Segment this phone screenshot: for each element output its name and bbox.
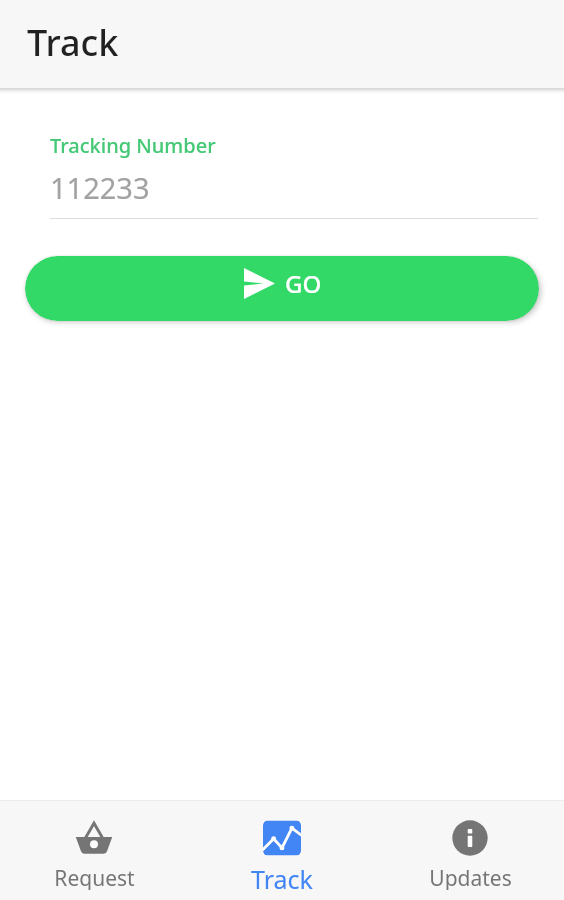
staticText: Tracking Number [50, 132, 216, 159]
button[interactable]: Updates [376, 801, 564, 900]
staticText: Track [251, 862, 313, 890]
button[interactable]: Request [0, 801, 188, 900]
staticText: 112233 [50, 168, 150, 207]
staticText: Track [27, 18, 119, 67]
staticText: Updates [429, 864, 512, 890]
button[interactable]: GO [25, 256, 539, 321]
button[interactable]: Tracking Number [50, 132, 538, 219]
staticText: GO [285, 267, 322, 300]
button[interactable]: Track [188, 801, 376, 900]
staticText: Request [54, 864, 135, 890]
